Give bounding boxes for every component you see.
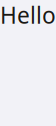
staticText: Hello <box>0 0 56 30</box>
